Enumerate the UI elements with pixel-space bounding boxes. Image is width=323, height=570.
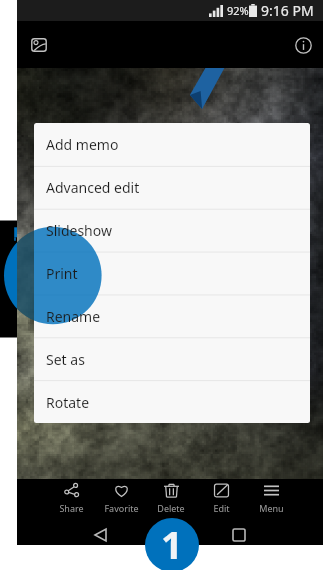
button[interactable]: Add memo xyxy=(34,123,310,166)
button[interactable]: Delete xyxy=(146,479,196,524)
staticText: 92% xyxy=(227,3,249,18)
button[interactable]: Back xyxy=(87,524,113,545)
staticText: Share xyxy=(59,502,84,514)
button[interactable]: Recents xyxy=(226,524,252,545)
button[interactable]: Set as xyxy=(34,338,310,381)
staticText: Rename xyxy=(46,307,101,326)
button[interactable]: Edit xyxy=(196,479,246,524)
staticText: Menu xyxy=(259,502,284,514)
button[interactable]: Share xyxy=(46,479,96,524)
staticText: Edit xyxy=(213,502,230,514)
staticText: Rotate xyxy=(46,393,90,412)
staticText: Add memo xyxy=(46,135,119,154)
staticText: Favorite xyxy=(104,502,139,514)
button[interactable]: Advanced edit xyxy=(34,166,310,209)
button[interactable]: Favorite xyxy=(96,479,146,524)
button[interactable]: Step 1 xyxy=(145,518,199,570)
button[interactable]: Gallery xyxy=(17,23,61,67)
staticText: Print xyxy=(46,264,78,283)
staticText: 1 xyxy=(161,518,183,570)
staticText: Set as xyxy=(46,350,85,369)
button[interactable]: Print xyxy=(34,252,310,295)
button[interactable]: Slideshow xyxy=(34,209,310,252)
staticText: Advanced edit xyxy=(46,178,140,197)
button[interactable]: Rotate xyxy=(34,381,310,423)
button[interactable]: Details xyxy=(281,23,323,67)
button[interactable]: Menu xyxy=(246,479,296,524)
staticText: Slideshow xyxy=(46,221,112,240)
button[interactable]: Rename xyxy=(34,295,310,338)
staticText: Delete xyxy=(157,502,185,514)
staticText: 9:16 PM xyxy=(261,1,314,20)
